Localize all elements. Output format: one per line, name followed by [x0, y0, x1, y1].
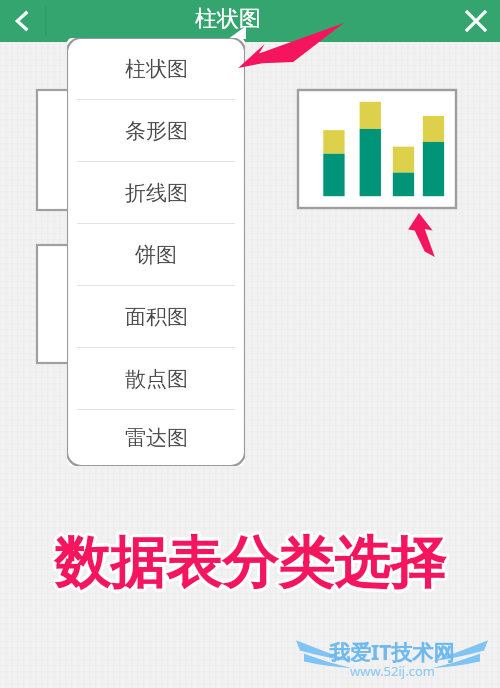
staticText: www.52ij.com [350, 662, 435, 680]
staticText: 数据表分类选择 [52, 530, 444, 601]
staticText: 数据表分类选择 [54, 528, 446, 599]
button[interactable]: Back [0, 0, 46, 42]
staticText: 柱状图 [195, 5, 261, 33]
staticText: 雷达图 [125, 425, 188, 451]
staticText: 饼图 [135, 242, 177, 268]
staticText: 数据表分类选择 [54, 525, 446, 596]
staticText: 数据表分类选择 [57, 528, 449, 599]
button[interactable]: 折线图 [67, 162, 245, 223]
button[interactable]: 雷达图 [67, 410, 245, 466]
staticText: 散点图 [125, 366, 188, 392]
staticText: 柱状图 [125, 56, 188, 82]
staticText: 数据表分类选择 [54, 531, 446, 602]
button[interactable] [37, 245, 133, 363]
button[interactable]: 面积图 [67, 286, 245, 347]
staticText: 条形图 [125, 118, 188, 144]
staticText: 面积图 [125, 304, 188, 330]
button[interactable]: Close [452, 0, 500, 42]
staticText: 数据表分类选择 [56, 526, 448, 597]
staticText: 我爱IT技术网 [329, 638, 455, 667]
button[interactable]: 散点图 [67, 348, 245, 409]
staticText: 折线图 [125, 180, 188, 206]
staticText: 数据表分类选择 [56, 530, 448, 601]
button[interactable]: 柱状图 [67, 38, 245, 99]
button[interactable] [298, 90, 456, 208]
staticText: 数据表分类选择 [51, 528, 443, 599]
button[interactable]: 饼图 [67, 224, 245, 285]
staticText: 数据表分类选择 [52, 526, 444, 597]
button[interactable]: 条形图 [67, 100, 245, 161]
button[interactable] [37, 90, 133, 210]
